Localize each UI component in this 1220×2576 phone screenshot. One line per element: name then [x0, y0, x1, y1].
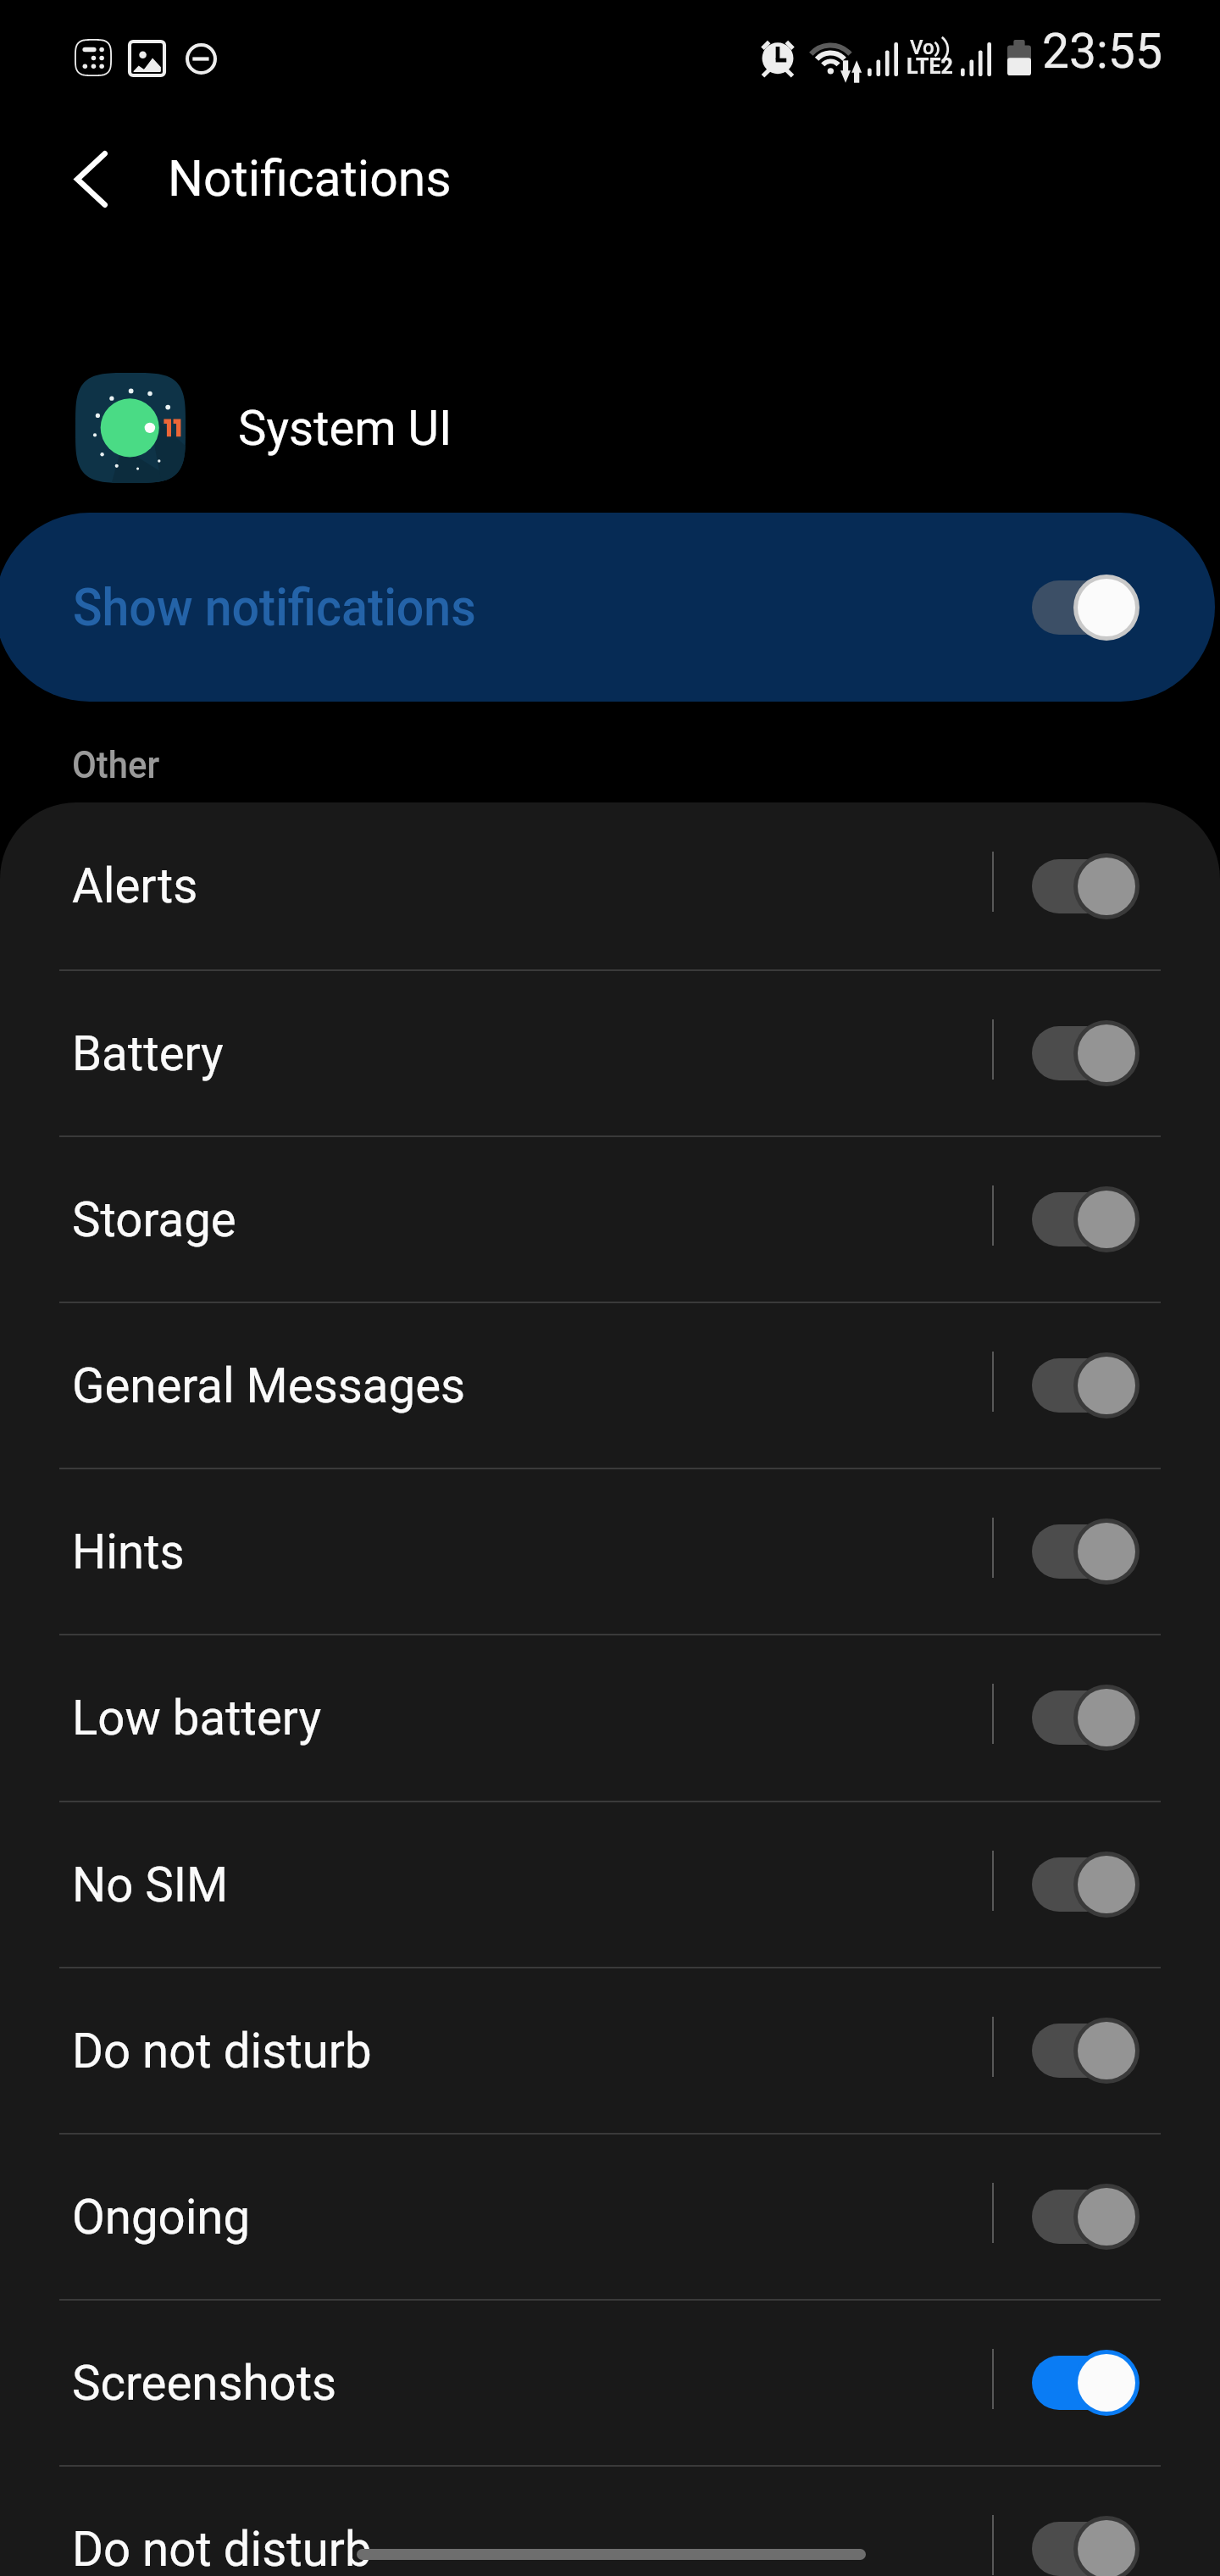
- button[interactable]: Toggle: [1032, 575, 1140, 641]
- staticText: System UI: [238, 399, 453, 457]
- staticText: Storage: [72, 1191, 236, 1248]
- button[interactable]: Screenshots: [0, 2301, 1220, 2465]
- staticText: Do not disturb: [72, 2521, 372, 2576]
- staticText: Screenshots: [72, 2355, 337, 2412]
- button[interactable]: Toggle: [1032, 2350, 1140, 2416]
- button[interactable]: Show notifications: [0, 513, 1215, 702]
- button[interactable]: Hints: [0, 1469, 1220, 1634]
- staticText: No SIM: [72, 1857, 229, 1913]
- button[interactable]: Ongoing: [0, 2135, 1220, 2299]
- staticText: Hints: [72, 1524, 185, 1580]
- button[interactable]: Toggle: [1032, 1518, 1140, 1585]
- button[interactable]: No SIM: [0, 1802, 1220, 1967]
- button[interactable]: Do not disturb: [0, 2467, 1220, 2576]
- staticText: Vo: [910, 36, 934, 59]
- staticText: Battery: [72, 1025, 224, 1082]
- button[interactable]: Battery: [0, 971, 1220, 1135]
- button[interactable]: Toggle: [1032, 1186, 1140, 1252]
- staticText: General Messages: [72, 1357, 466, 1414]
- staticText: 23:55: [1042, 23, 1162, 80]
- button[interactable]: Toggle: [1032, 1685, 1140, 1751]
- button[interactable]: General Messages: [0, 1303, 1220, 1468]
- button[interactable]: Low battery: [0, 1635, 1220, 1800]
- staticText: Notifications: [168, 148, 452, 208]
- staticText: Show notifications: [73, 576, 476, 638]
- button[interactable]: Toggle: [1032, 1851, 1140, 1918]
- button[interactable]: Back: [51, 126, 132, 208]
- button[interactable]: Do not disturb: [0, 1968, 1220, 2133]
- button[interactable]: Toggle: [1032, 1352, 1140, 1418]
- staticText: Ongoing: [72, 2189, 251, 2246]
- button[interactable]: Toggle: [1032, 2018, 1140, 2084]
- button[interactable]: Toggle: [1032, 853, 1140, 919]
- button[interactable]: Toggle: [1032, 2516, 1140, 2576]
- button[interactable]: Storage: [0, 1137, 1220, 1302]
- staticText: LTE2: [907, 54, 953, 79]
- staticText: Alerts: [72, 858, 198, 914]
- staticText: Low battery: [72, 1690, 322, 1746]
- staticText: Do not disturb: [72, 2023, 372, 2079]
- button[interactable]: Toggle: [1032, 2184, 1140, 2250]
- staticText: Other: [72, 743, 160, 787]
- button[interactable]: Toggle: [1032, 1020, 1140, 1086]
- button[interactable]: Alerts: [0, 802, 1220, 969]
